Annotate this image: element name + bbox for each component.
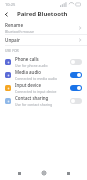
button[interactable]: On [70,72,82,78]
staticText: Media audio [15,69,41,75]
button[interactable]: Input device [0,81,87,94]
staticText: Connected to input device [15,89,57,94]
staticText: 10:25 [5,2,16,7]
staticText: Connected to media audio [15,76,58,81]
button[interactable]: Back [0,8,12,20]
button[interactable]: On [70,85,82,91]
button[interactable]: Unpair [0,35,87,45]
staticText: Input device [15,82,41,88]
staticText: USE FOR [5,48,19,53]
staticText: Use for contact sharing [15,102,53,107]
staticText: Contact sharing [15,95,49,101]
button[interactable]: Contact sharing [0,94,87,107]
button[interactable]: Media audio [0,68,87,81]
staticText: Unpair [5,37,20,43]
button[interactable]: Rename [0,22,87,34]
button[interactable]: Back [62,167,74,179]
staticText: Bluetooth mouse [5,29,35,34]
button[interactable]: Phone calls [0,55,87,68]
button[interactable]: Off [70,59,82,65]
staticText: Paired Bluetooth device [17,10,87,18]
button[interactable]: Home [38,167,50,179]
button[interactable]: Off [70,98,82,104]
staticText: Phone calls [15,56,39,62]
button[interactable]: Recents [13,167,25,179]
staticText: Use for phone audio [15,63,48,68]
staticText: Rename [5,22,24,28]
